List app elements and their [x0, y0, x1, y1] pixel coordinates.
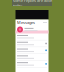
staticText: some replies are alive today	[13, 0, 52, 8]
staticText: Messages	[17, 20, 35, 25]
